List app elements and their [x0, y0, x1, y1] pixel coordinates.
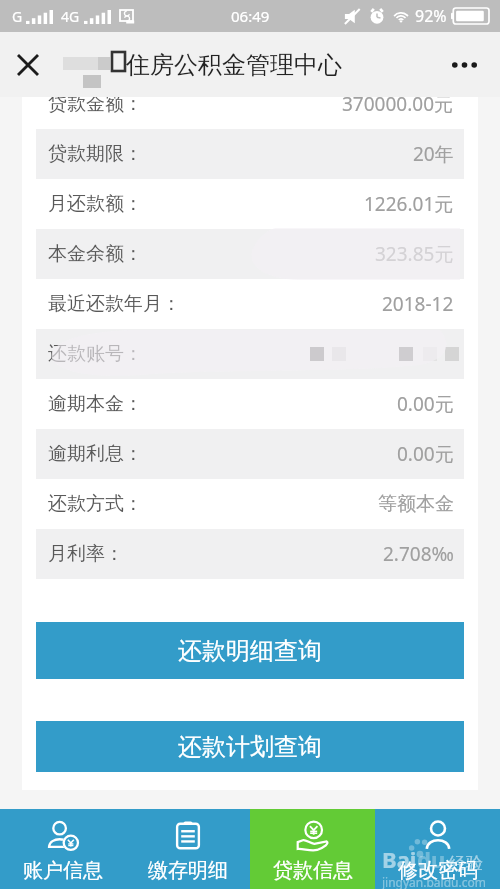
staticText: 账户信息	[23, 858, 103, 883]
staticText: 住房公积金管理中心	[126, 50, 342, 80]
button[interactable]: More options	[444, 45, 484, 85]
staticText: 月利率：	[48, 542, 124, 566]
button[interactable]: 缴存明细	[125, 809, 250, 889]
button[interactable]: 修改密码	[375, 809, 500, 889]
staticText: 缴存明细	[148, 858, 228, 883]
staticText: 0.00元	[397, 391, 454, 417]
staticText: 20年	[413, 141, 454, 167]
staticText: 2018-12	[382, 291, 454, 317]
button[interactable]: 账户信息	[0, 809, 125, 889]
staticText: 4G	[61, 7, 80, 26]
button[interactable]: Close	[8, 45, 48, 85]
staticText: 贷款期限：	[48, 142, 143, 166]
staticText: 最近还款年月：	[48, 292, 181, 316]
staticText: Bai	[382, 844, 417, 874]
staticText: 本金余额：	[48, 242, 143, 266]
staticText: 2.708‰	[383, 541, 454, 567]
staticText: 贷款信息	[273, 858, 353, 883]
staticText: 还款账号：	[48, 342, 143, 366]
staticText: G	[12, 7, 23, 26]
staticText: 逾期利息：	[48, 442, 143, 466]
staticText: 经验	[449, 853, 483, 874]
staticText: 逾期本金：	[48, 392, 143, 416]
button[interactable]: 还款明细查询	[36, 622, 464, 679]
staticText: 等额本金	[378, 492, 454, 516]
staticText: 06:49	[231, 6, 270, 26]
staticText: 还款明细查询	[178, 636, 322, 666]
staticText: du	[417, 844, 446, 874]
staticText: 修改密码	[398, 858, 478, 883]
staticText: jingyan.baidu.com	[382, 874, 486, 889]
staticText: 0.00元	[397, 441, 454, 467]
staticText: 323.85元	[375, 241, 454, 267]
button[interactable]: 还款计划查询	[36, 721, 464, 772]
staticText: 贷款金额：	[48, 97, 143, 116]
button[interactable]: 贷款信息	[250, 809, 375, 889]
staticText: 1226.01元	[364, 191, 454, 217]
staticText: 92%	[415, 5, 447, 27]
staticText: 月还款额：	[48, 192, 143, 216]
staticText: 还款方式：	[48, 492, 143, 516]
staticText: 370000.00元	[342, 97, 454, 117]
staticText: 还款计划查询	[178, 732, 322, 762]
